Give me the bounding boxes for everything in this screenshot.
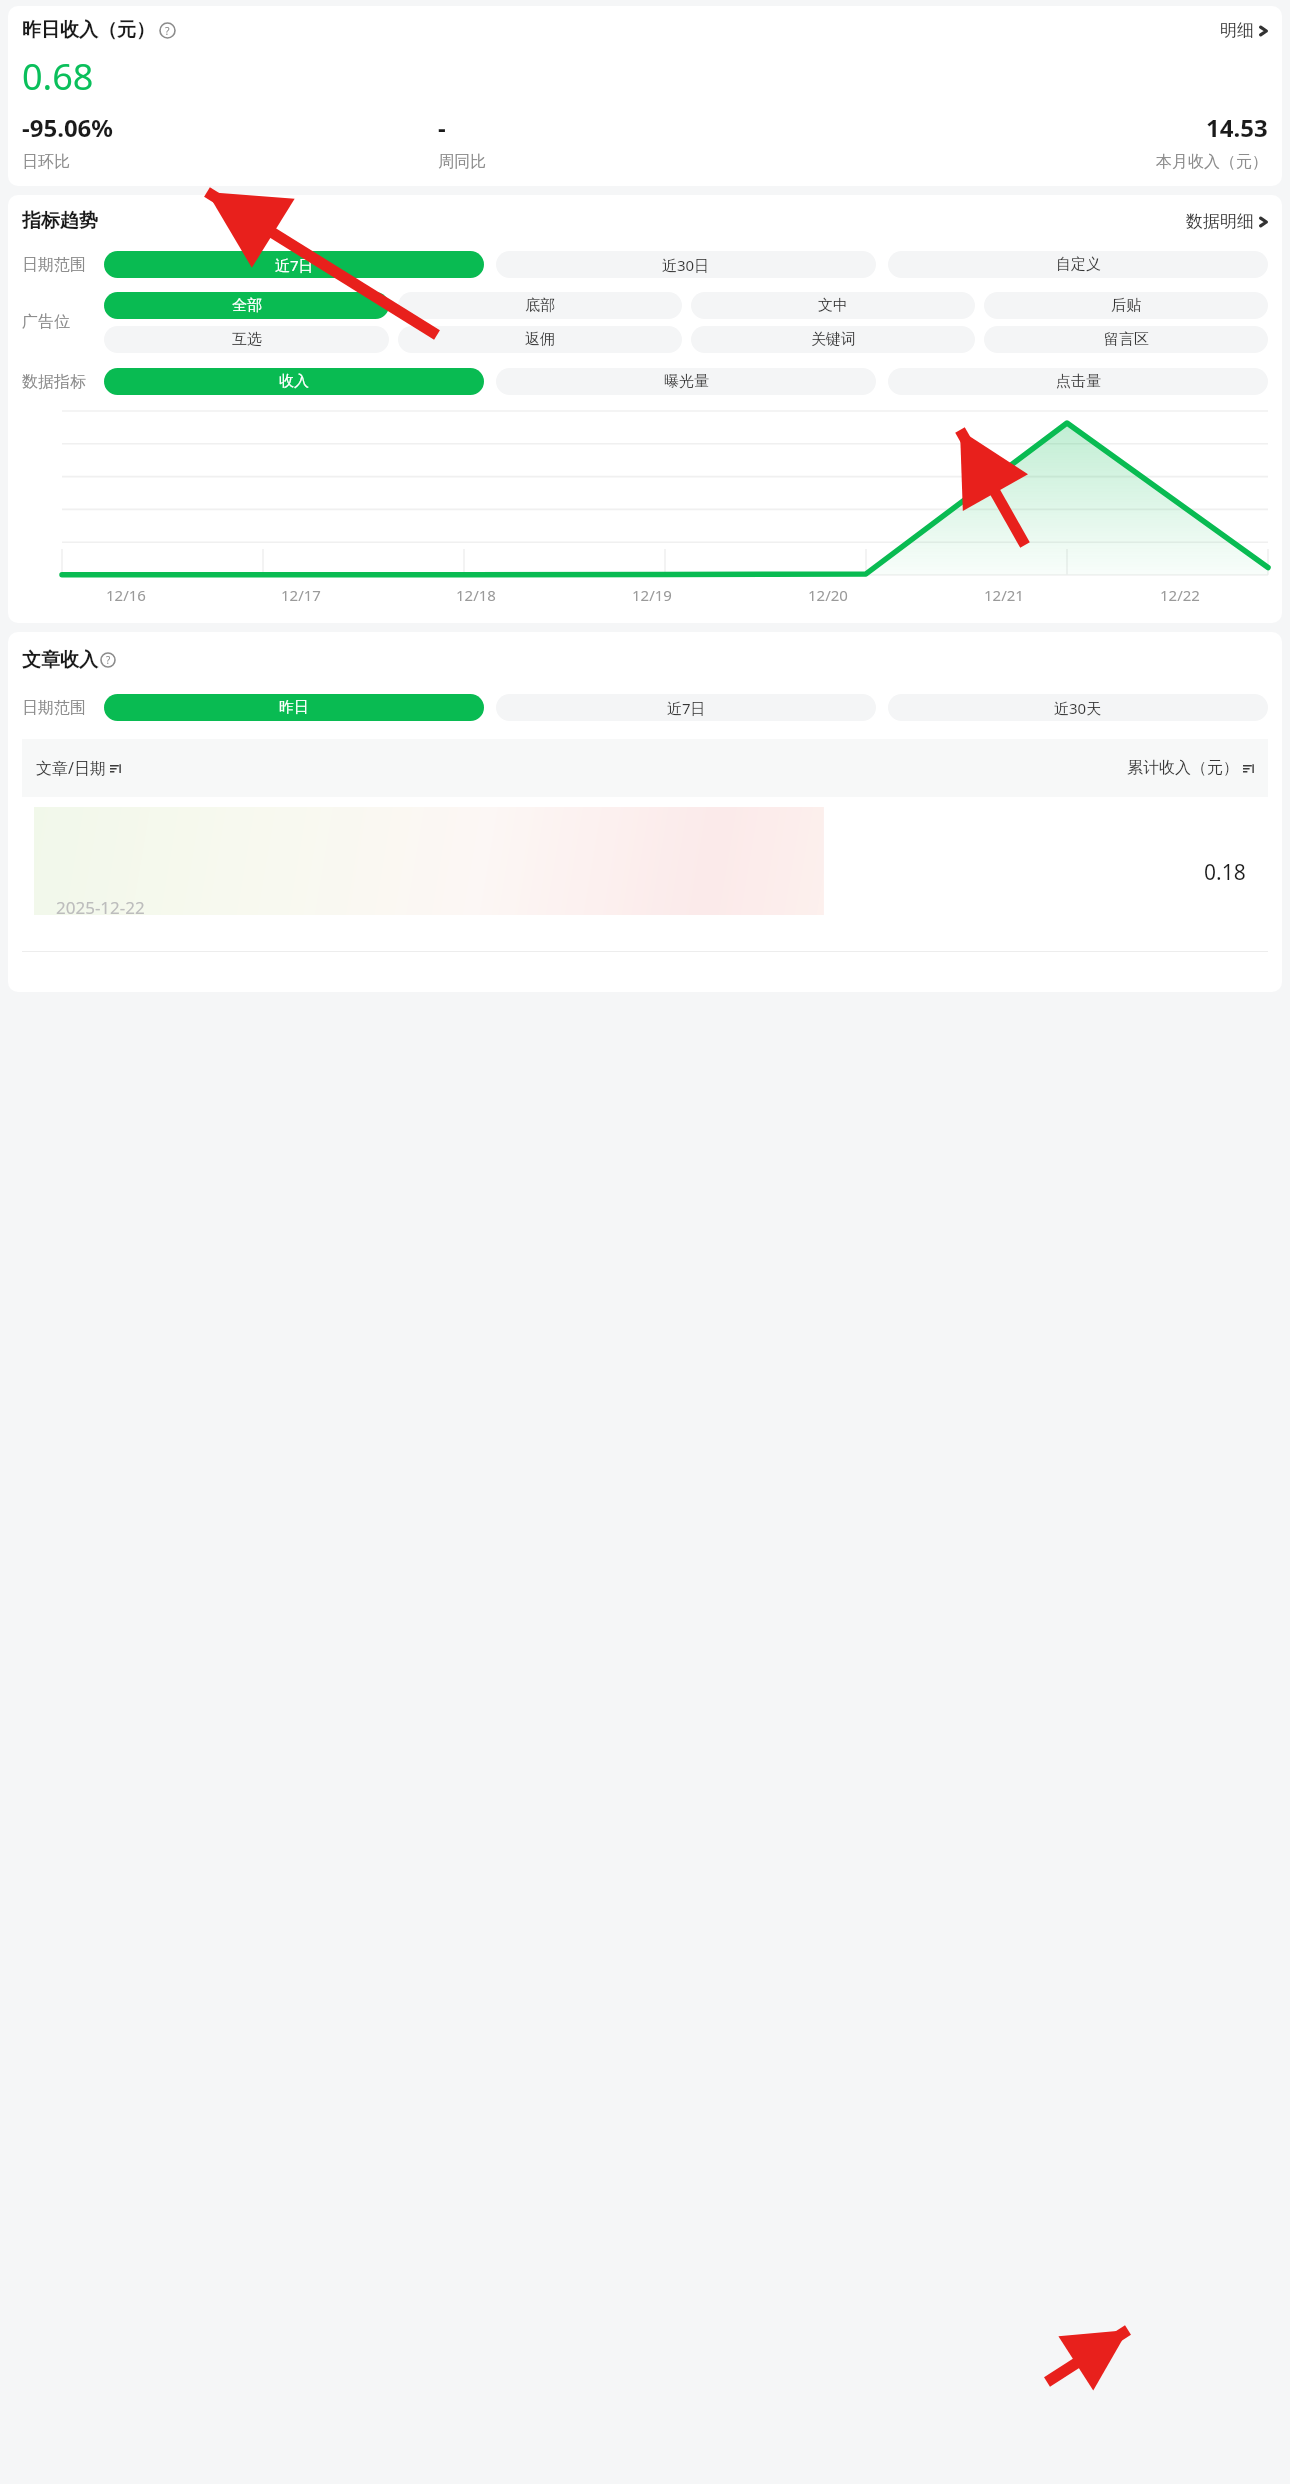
button[interactable]: 关键词 — [691, 326, 975, 353]
staticText: 日期范围 — [22, 255, 86, 275]
button[interactable]: 近30日 — [496, 251, 876, 278]
staticText: 后贴 — [1111, 296, 1141, 315]
button[interactable]: 昨日 — [104, 694, 484, 721]
staticText: 数据指标 — [22, 372, 86, 392]
button[interactable]: 曝光量 — [496, 368, 876, 395]
staticText: 本月收入（元） — [1156, 152, 1268, 172]
staticText: -95.06% — [22, 111, 113, 144]
other: Help — [100, 652, 116, 668]
staticText: 自定义 — [1056, 255, 1101, 274]
button[interactable]: 近7日 — [496, 694, 876, 721]
staticText: 周同比 — [438, 152, 486, 172]
staticText: 点击量 — [1056, 372, 1101, 391]
staticText: 昨日收入（元） — [22, 18, 155, 42]
button[interactable]: 后贴 — [984, 292, 1268, 319]
staticText: 数据明细 — [1186, 211, 1254, 232]
staticText: 返佣 — [525, 330, 555, 349]
staticText: 留言区 — [1104, 330, 1149, 349]
button[interactable]: 2025-12-22 — [8, 797, 1282, 947]
staticText: 14.53 — [1206, 111, 1268, 144]
button[interactable]: 收入 — [104, 368, 484, 395]
staticText: ? — [106, 653, 111, 667]
staticText: 近7日 — [667, 698, 706, 718]
staticText: 0.18 — [1204, 858, 1246, 887]
button[interactable]: 互选 — [104, 326, 389, 353]
button[interactable]: 底部 — [398, 292, 682, 319]
staticText: 昨日 — [279, 698, 309, 717]
button[interactable]: 自定义 — [888, 251, 1268, 278]
button[interactable]: 点击量 — [888, 368, 1268, 395]
staticText: 广告位 — [22, 312, 70, 332]
staticText: 12/17 — [281, 585, 321, 605]
staticText: 12/18 — [456, 585, 496, 605]
staticText: ? — [165, 24, 170, 38]
staticText: 2025-12-22 — [56, 896, 145, 919]
staticText: 日环比 — [22, 152, 70, 172]
staticText: 文中 — [818, 296, 848, 315]
button[interactable]: 留言区 — [984, 326, 1268, 353]
staticText: 12/21 — [984, 585, 1024, 605]
staticText: 日期范围 — [22, 698, 86, 718]
button[interactable]: 明细 — [1220, 20, 1268, 41]
staticText: 互选 — [232, 330, 262, 349]
button[interactable]: 文中 — [691, 292, 975, 319]
staticText: 近7日 — [275, 255, 314, 275]
button[interactable]: 近30天 — [888, 694, 1268, 721]
button[interactable]: 全部 — [104, 292, 389, 319]
staticText: 12/16 — [106, 585, 146, 605]
staticText: 12/19 — [632, 585, 672, 605]
staticText: 文章收入 — [22, 648, 98, 672]
staticText: 文章/日期 — [36, 757, 106, 779]
staticText: 12/22 — [1160, 585, 1200, 605]
staticText: 底部 — [525, 296, 555, 315]
staticText: 全部 — [232, 296, 262, 315]
staticText: 0.68 — [22, 52, 94, 101]
button[interactable]: 数据明细 — [1186, 211, 1268, 232]
staticText: 曝光量 — [664, 372, 709, 391]
staticText: 明细 — [1220, 20, 1254, 41]
staticText: 累计收入（元） — [1127, 758, 1239, 778]
button[interactable]: 近7日 — [104, 251, 484, 278]
staticText: 近30天 — [1054, 698, 1102, 718]
staticText: 收入 — [279, 372, 309, 391]
staticText: - — [438, 111, 446, 144]
staticText: 关键词 — [811, 330, 856, 349]
button[interactable]: 返佣 — [398, 326, 682, 353]
staticText: 12/20 — [808, 585, 848, 605]
staticText: 指标趋势 — [22, 209, 98, 233]
staticText: 近30日 — [662, 255, 710, 275]
other: Help — [159, 22, 176, 39]
